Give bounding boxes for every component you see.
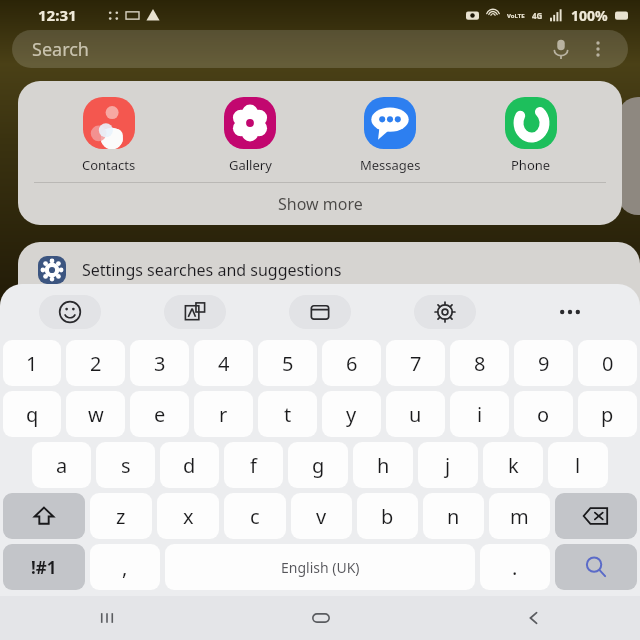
button[interactable]: h (353, 442, 413, 488)
button[interactable]: Clipboard (257, 284, 382, 340)
staticText: w (88, 401, 104, 428)
button[interactable]: Recents (0, 596, 214, 640)
button[interactable]: c (224, 493, 286, 539)
button[interactable]: g (288, 442, 348, 488)
button[interactable]: d (160, 442, 219, 488)
button[interactable]: a (32, 442, 91, 488)
button[interactable]: . (480, 544, 550, 590)
staticText: tap (428, 304, 452, 324)
button[interactable]: 7 (386, 340, 445, 386)
button[interactable]: v (291, 493, 352, 539)
button[interactable]: k (483, 442, 543, 488)
button[interactable]: q (3, 391, 61, 437)
staticText: sim (72, 304, 98, 324)
button[interactable]: 0 (578, 340, 637, 386)
staticText: 7 (410, 350, 422, 377)
button[interactable]: f (224, 442, 283, 488)
staticText: u (409, 401, 422, 428)
staticText: l (575, 452, 581, 479)
staticText: f (250, 452, 257, 479)
button[interactable]: Translate (132, 284, 257, 340)
button[interactable]: 6 (322, 340, 381, 386)
button[interactable]: English (UK) (165, 544, 475, 590)
staticText: 2 (90, 350, 102, 377)
button[interactable]: , (90, 544, 160, 590)
staticText: m (510, 503, 529, 530)
button[interactable]: r (194, 391, 253, 437)
button[interactable]: usb (498, 298, 594, 330)
button[interactable]: w (66, 391, 125, 437)
button[interactable]: u (386, 391, 445, 437)
staticText: o (537, 401, 550, 428)
button[interactable]: Emoji (8, 284, 132, 340)
button[interactable]: 1 (3, 340, 61, 386)
button[interactable]: sim (38, 298, 132, 330)
button[interactable]: p (578, 391, 637, 437)
button[interactable]: 4 (194, 340, 253, 386)
button[interactable]: More (507, 284, 632, 340)
button[interactable]: t (258, 391, 317, 437)
button[interactable]: x (157, 493, 219, 539)
staticText: . (512, 554, 518, 581)
staticText: English (UK) (281, 558, 360, 577)
button[interactable]: n (423, 493, 484, 539)
staticText: dark (182, 304, 214, 324)
staticText: Contacts (82, 156, 136, 174)
button[interactable]: m (489, 493, 550, 539)
staticText: p (601, 401, 614, 428)
other: More options (588, 39, 608, 59)
button[interactable]: o (514, 391, 573, 437)
button[interactable]: dark (144, 298, 252, 330)
button[interactable]: Search (555, 544, 637, 590)
other: Voice search (550, 38, 572, 60)
button[interactable]: Settings searches and suggestions (18, 242, 640, 346)
button[interactable]: Shift (3, 493, 85, 539)
staticText: 5 (282, 350, 294, 377)
button[interactable]: Home (214, 596, 427, 640)
button[interactable]: z (90, 493, 152, 539)
staticText: r (219, 401, 228, 428)
staticText: y (346, 401, 357, 428)
button[interactable]: touch (264, 298, 382, 330)
button[interactable]: l (548, 442, 608, 488)
button[interactable]: s (96, 442, 155, 488)
button[interactable]: Messages (341, 95, 439, 176)
staticText: 4 (218, 350, 230, 377)
button[interactable]: i (450, 391, 509, 437)
button[interactable]: Search (12, 30, 628, 68)
button[interactable]: Back (427, 596, 640, 640)
button[interactable]: y (322, 391, 381, 437)
staticText: x (183, 503, 194, 530)
staticText: 100% (571, 6, 608, 25)
staticText: touch (303, 304, 344, 324)
staticText: z (116, 503, 126, 530)
button[interactable]: 3 (130, 340, 189, 386)
staticText: s (121, 452, 131, 479)
button[interactable]: Backspace (555, 493, 637, 539)
button[interactable]: 5 (258, 340, 317, 386)
button[interactable]: tap (394, 298, 486, 330)
button[interactable]: Contacts (60, 95, 158, 176)
staticText: i (477, 401, 483, 428)
button[interactable]: 9 (514, 340, 573, 386)
staticText: n (447, 503, 460, 530)
button[interactable]: Contacts (18, 81, 622, 225)
button[interactable]: j (418, 442, 478, 488)
button[interactable]: Gallery (201, 95, 299, 176)
button[interactable]: Phone (482, 95, 580, 176)
button[interactable]: 8 (450, 340, 509, 386)
button[interactable]: 2 (66, 340, 125, 386)
staticText: Phone (511, 156, 551, 174)
staticText: Settings searches and suggestions (82, 259, 342, 281)
staticText: t (284, 401, 292, 428)
staticText: Show more (278, 193, 363, 215)
button[interactable]: Show more (18, 183, 622, 225)
button[interactable]: Keyboard settings (382, 284, 507, 340)
button[interactable]: !#1 (3, 544, 85, 590)
button[interactable]: e (130, 391, 189, 437)
staticText: 0 (602, 350, 614, 377)
button[interactable]: b (357, 493, 418, 539)
staticText: q (26, 401, 39, 428)
staticText: j (445, 452, 451, 479)
